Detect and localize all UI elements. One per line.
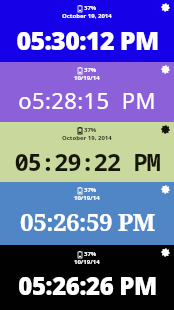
staticText: 10/19/14 [74, 194, 100, 202]
button[interactable]: Settings [161, 3, 170, 12]
staticText: October 19, 2014 [62, 12, 112, 20]
staticText: 05:30:12 PM [16, 23, 159, 57]
staticText: 37% [84, 126, 97, 134]
button[interactable]: Settings [161, 185, 170, 194]
button[interactable]: 37% [0, 182, 174, 245]
button[interactable]: 37% [0, 0, 174, 62]
staticText: 05:26:26 PM [18, 269, 157, 302]
staticText: 37% [84, 66, 97, 74]
staticText: 37% [84, 186, 97, 194]
staticText: 37% [84, 250, 97, 258]
staticText: o5:28:15 PM [18, 85, 156, 115]
staticText: 37% [84, 4, 97, 12]
button[interactable]: 37% [0, 245, 174, 310]
staticText: 05:29:22 PM [14, 145, 160, 178]
button[interactable]: 37% [0, 62, 174, 122]
staticText: October 19, 2014 [62, 134, 112, 142]
staticText: 10/19/14 [74, 74, 100, 82]
button[interactable]: 37% [0, 122, 174, 182]
button[interactable]: Settings [161, 65, 170, 74]
staticText: 05:26:59 PM [20, 205, 155, 238]
staticText: 10/19/14 [74, 258, 100, 266]
button[interactable]: Settings [161, 125, 170, 134]
button[interactable]: Settings [161, 248, 170, 257]
